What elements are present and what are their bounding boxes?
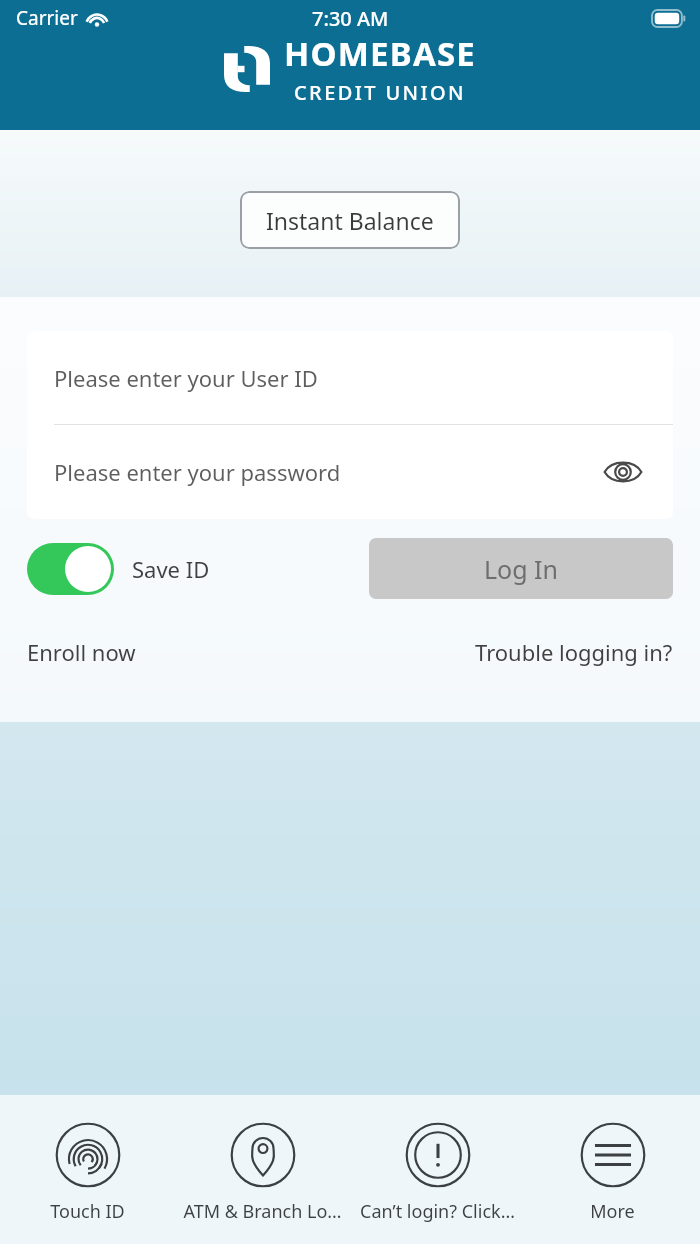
staticText: Save ID [132,554,210,584]
button[interactable]: ATM and Branch Locator [175,1095,350,1244]
staticText: Please enter your password [54,457,341,487]
staticText: Please enter your User ID [54,363,318,393]
button[interactable]: Touch ID [0,1095,175,1244]
staticText: Instant Balance [266,205,434,236]
staticText: Carrier [16,5,78,31]
button[interactable]: Please enter your User ID [27,331,673,424]
button[interactable]: Show password [600,449,646,495]
button[interactable]: Trouble logging in? [475,637,673,667]
button[interactable]: Log In [369,538,673,599]
button[interactable]: Please enter your password [27,425,673,519]
staticText: CREDIT UNION [294,79,466,106]
staticText: More [590,1199,635,1224]
staticText: Trouble logging in? [475,637,673,667]
button[interactable]: Instant Balance [240,191,460,249]
staticText: Log In [484,552,559,586]
staticText: ATM & Branch Lo… [183,1199,342,1224]
staticText: Enroll now [27,637,136,667]
staticText: Can’t login? Click… [360,1199,515,1224]
button[interactable]: More [525,1095,700,1244]
staticText: HOMEBASE [284,31,476,76]
button[interactable]: Can't login help [350,1095,525,1244]
staticText: 7:30 AM [312,5,389,32]
button[interactable]: Save ID toggle [27,543,210,595]
button[interactable]: Enroll now [27,637,136,667]
other: Save ID toggle [27,543,114,595]
staticText: Touch ID [50,1199,125,1224]
